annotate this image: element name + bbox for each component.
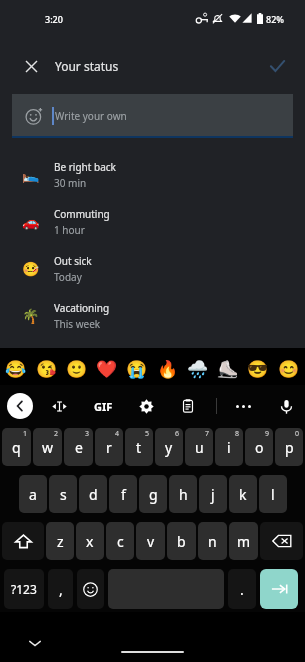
button[interactable]: j (199, 475, 227, 513)
button[interactable]: g (139, 475, 167, 513)
staticText: f (121, 485, 126, 504)
staticText: y (165, 438, 173, 457)
button[interactable]: 😭 (123, 355, 151, 383)
staticText: 🙂 (66, 359, 88, 379)
button[interactable]: d (79, 475, 107, 513)
button[interactable]: Shift (2, 522, 44, 560)
button[interactable]: Clipboard (174, 392, 202, 420)
button[interactable]: o (245, 428, 273, 466)
button[interactable]: 🙂 (63, 355, 91, 383)
button[interactable]: i (215, 428, 243, 466)
staticText: 82% (266, 13, 284, 25)
button[interactable]: Text editing (45, 392, 73, 420)
button[interactable]: c (106, 522, 134, 560)
staticText: Be right back (54, 160, 116, 174)
button[interactable]: GIF keyboard (89, 392, 117, 420)
button[interactable]: ⛸️ (214, 355, 242, 383)
button[interactable]: z (46, 522, 74, 560)
staticText: 6 (175, 429, 180, 439)
staticText: j (211, 485, 215, 504)
button[interactable]: 😘 (33, 355, 61, 383)
staticText: r (106, 438, 112, 457)
button[interactable]: 😎 (244, 355, 272, 383)
staticText: c (117, 532, 124, 551)
button[interactable]: x (76, 522, 104, 560)
staticText: This week (54, 317, 101, 331)
staticText: GIF (94, 399, 113, 414)
button[interactable]: ❤️ (93, 355, 121, 383)
staticText: ❤️ (96, 359, 118, 379)
staticText: u (195, 438, 204, 457)
button[interactable]: Write your own (12, 94, 293, 138)
staticText: 0 (295, 429, 300, 439)
staticText: e (75, 438, 83, 457)
button[interactable]: l (259, 475, 287, 513)
staticText: 9 (265, 429, 270, 439)
button[interactable]: h (169, 475, 197, 513)
button[interactable]: s (49, 475, 77, 513)
button[interactable]: 😊 (275, 355, 303, 383)
button[interactable]: 🌧️ (184, 355, 212, 383)
staticText: 8 (235, 429, 240, 439)
button[interactable]: 🤒 (0, 245, 305, 292)
button[interactable]: r (95, 428, 123, 466)
staticText: i (227, 438, 231, 457)
staticText: 1 (23, 429, 28, 439)
button[interactable]: Next (260, 569, 298, 609)
staticText: n (208, 532, 217, 551)
button[interactable]: e (64, 428, 93, 466)
staticText: k (239, 485, 247, 504)
button[interactable]: 🚗 (0, 198, 305, 245)
button[interactable]: Emoji (77, 569, 104, 609)
button[interactable]: v (136, 522, 165, 560)
staticText: Your status (55, 58, 119, 74)
staticText: 5 (145, 429, 150, 439)
button[interactable]: m (229, 522, 258, 560)
staticText: g (149, 485, 158, 504)
button[interactable]: , (48, 569, 73, 609)
button[interactable]: 🔥 (154, 355, 182, 383)
button[interactable]: Back (7, 393, 33, 419)
button[interactable]: More options (229, 392, 257, 420)
button[interactable]: w (33, 428, 62, 466)
button[interactable]: ?123 (4, 569, 44, 609)
staticText: h (179, 485, 188, 504)
button[interactable]: 🌴 (0, 292, 305, 339)
staticText: 🌴 (22, 308, 40, 324)
staticText: 3 (85, 429, 90, 439)
staticText: 😎 (247, 359, 269, 379)
staticText: 2 (54, 429, 59, 439)
staticText: o (255, 438, 264, 457)
button[interactable]: Save status (259, 48, 295, 84)
staticText: x (86, 532, 94, 551)
staticText: p (285, 438, 294, 457)
button[interactable]: Close (13, 48, 49, 84)
staticText: d (89, 485, 98, 504)
staticText: Today (54, 270, 82, 284)
staticText: ⛸️ (217, 359, 239, 379)
button[interactable]: f (109, 475, 137, 513)
button[interactable]: n (198, 522, 227, 560)
button[interactable]: p (275, 428, 303, 466)
staticText: 🌧️ (187, 359, 209, 379)
button[interactable]: a (19, 475, 47, 513)
button[interactable]: Settings (132, 392, 160, 420)
button[interactable]: y (155, 428, 183, 466)
button[interactable]: Voice input (272, 392, 300, 420)
button[interactable]: Hide keyboard (23, 631, 47, 655)
button[interactable]: . (228, 569, 256, 609)
button[interactable]: 😂 (2, 355, 30, 383)
staticText: 4 (115, 429, 120, 439)
staticText: Write your own (55, 109, 127, 123)
staticText: 😘 (36, 359, 58, 379)
button[interactable]: k (229, 475, 257, 513)
button[interactable]: q (2, 428, 31, 466)
button[interactable]: b (167, 522, 196, 560)
staticText: a (29, 485, 37, 504)
button[interactable]: u (185, 428, 213, 466)
button[interactable]: Backspace (260, 522, 303, 560)
button[interactable]: t (125, 428, 153, 466)
staticText: 🔥 (157, 359, 179, 379)
button[interactable]: 🛌 (0, 151, 305, 198)
